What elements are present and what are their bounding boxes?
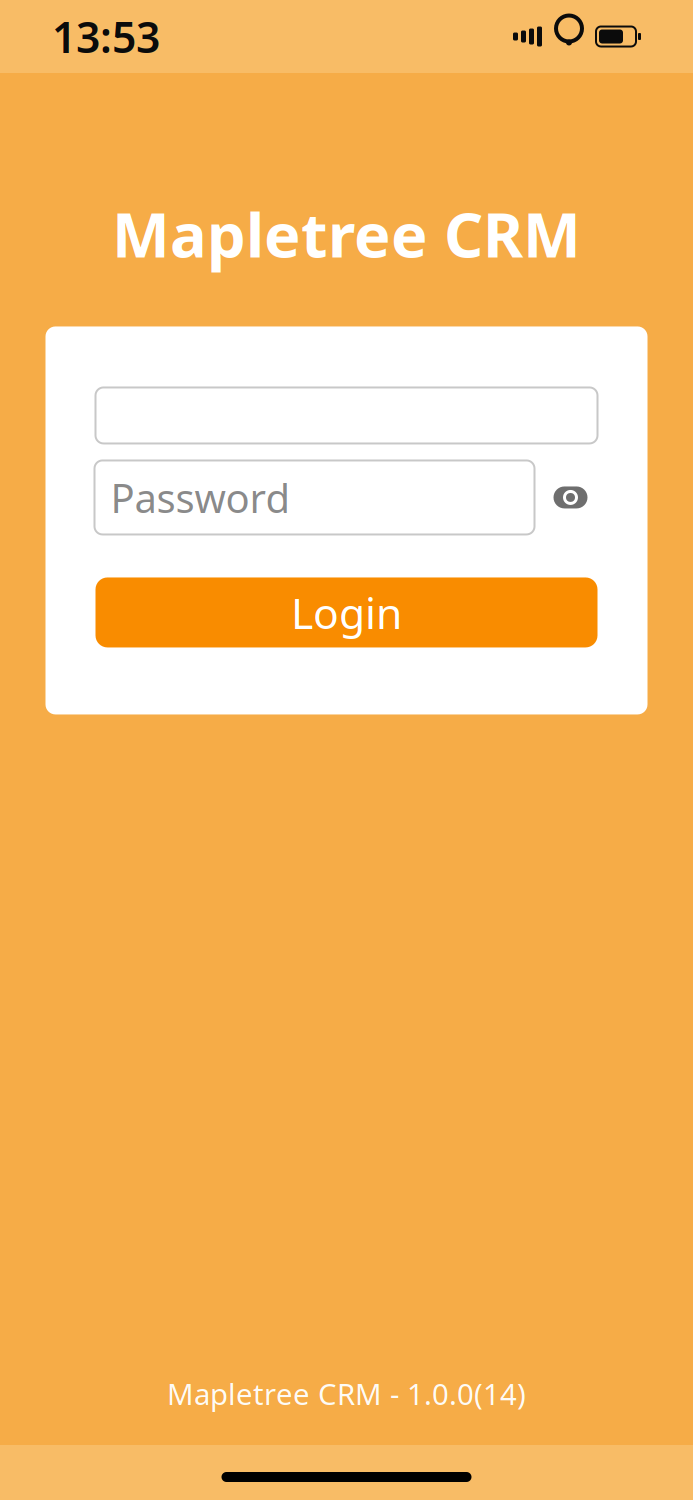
staticText: Mapletree CRM (112, 193, 581, 274)
button[interactable]: Login (95, 577, 597, 647)
staticText: Password (110, 471, 290, 524)
button[interactable]: Show password (542, 460, 598, 534)
staticText: 13:53 (52, 8, 160, 65)
staticText: Login (291, 584, 402, 641)
staticText: Mapletree CRM - 1.0.0(14) (167, 1374, 526, 1413)
